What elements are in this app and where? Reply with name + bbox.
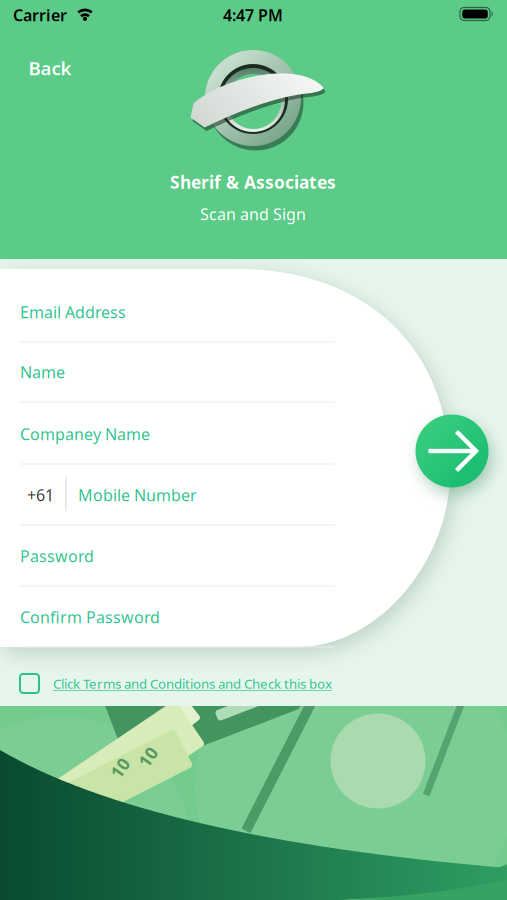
staticText: Confirm Password	[20, 606, 160, 628]
staticText: Click Terms and Conditions and Check thi…	[53, 675, 332, 692]
staticText: 10	[110, 756, 130, 779]
staticText: Mobile Number	[78, 484, 197, 506]
button[interactable]: Companey Name	[20, 419, 335, 479]
button[interactable]: Password	[20, 541, 335, 601]
staticText: Name	[20, 361, 65, 383]
button[interactable]: Email Address	[20, 297, 335, 357]
staticText: Email Address	[20, 301, 126, 323]
staticText: Carrier	[13, 4, 67, 26]
button[interactable]: +61	[20, 480, 335, 540]
button[interactable]: Back	[15, 51, 85, 85]
button[interactable]: Confirm Password	[20, 602, 335, 662]
button[interactable]: Continue	[415, 414, 488, 487]
button[interactable]: Name	[20, 357, 335, 417]
staticText: Sherif & Associates	[170, 170, 336, 193]
staticText: Password	[20, 545, 94, 567]
staticText: Scan and Sign	[200, 203, 306, 225]
staticText: Companey Name	[20, 423, 150, 445]
staticText: Back	[28, 56, 71, 80]
staticText: 4:47 PM	[223, 4, 283, 26]
staticText: +61	[27, 484, 54, 506]
button[interactable]: Accept Terms and Conditions	[20, 668, 350, 698]
staticText: 10	[138, 745, 158, 768]
